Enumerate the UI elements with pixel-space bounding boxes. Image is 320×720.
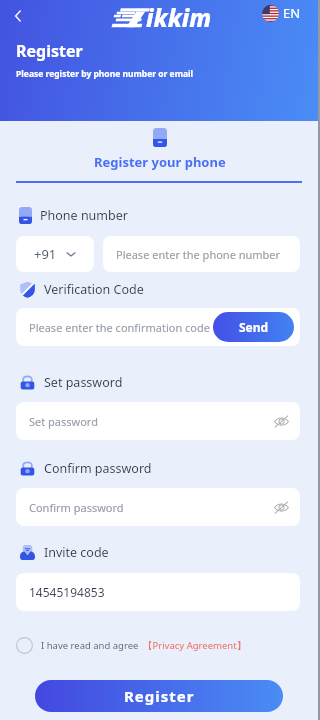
button[interactable]: EN: [262, 4, 301, 22]
staticText: Please register by phone number or email: [16, 68, 194, 80]
staticText: Please enter the phone number: [116, 247, 281, 262]
staticText: Register your phone: [94, 153, 226, 171]
staticText: +91: [34, 245, 57, 263]
button[interactable]: Confirm password: [16, 488, 300, 526]
staticText: Set password: [44, 374, 123, 391]
button[interactable]: Back: [4, 2, 32, 30]
staticText: Confirm password: [44, 460, 152, 477]
staticText: Phone number: [40, 207, 128, 224]
button[interactable]: Send: [213, 312, 294, 342]
button[interactable]: I have read and agree: [16, 637, 247, 654]
button[interactable]: Please enter the phone number: [103, 236, 300, 272]
button[interactable]: Toggle password visibility: [271, 497, 291, 517]
staticText: 14545194853: [29, 584, 105, 600]
staticText: Please enter the confirmation code: [29, 320, 210, 335]
staticText: Confirm password: [29, 500, 124, 515]
staticText: Send: [239, 319, 269, 335]
staticText: Register: [124, 686, 195, 706]
staticText: 【Privacy Agreement】: [143, 639, 247, 652]
staticText: Register: [16, 40, 83, 62]
button[interactable]: Toggle password visibility: [271, 411, 291, 431]
button[interactable]: Set password: [16, 402, 300, 440]
staticText: Set password: [29, 414, 98, 429]
staticText: ikkim: [146, 1, 212, 34]
staticText: Invite code: [44, 544, 109, 561]
staticText: Verification Code: [44, 281, 144, 298]
button[interactable]: +91: [16, 236, 94, 272]
button[interactable]: 14545194853: [16, 573, 300, 611]
staticText: EN: [283, 4, 301, 22]
button[interactable]: Register: [35, 680, 283, 712]
staticText: I have read and agree: [41, 639, 139, 652]
